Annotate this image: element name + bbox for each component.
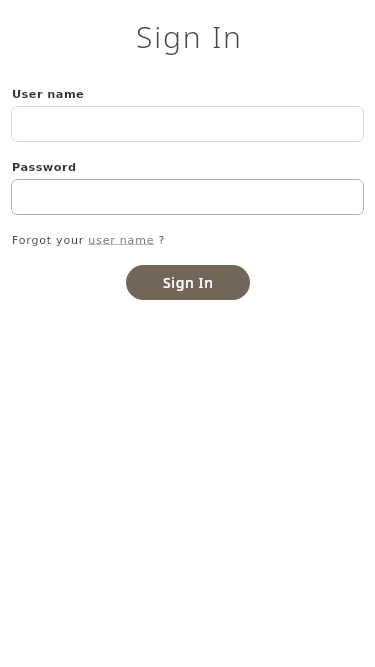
button[interactable]: Forgot your user name ? — [12, 234, 166, 247]
staticText: Sign In — [163, 273, 214, 292]
staticText: Sign In — [136, 16, 243, 57]
button[interactable] — [11, 179, 364, 215]
staticText: Password — [12, 161, 77, 174]
button[interactable]: Sign In — [126, 265, 250, 300]
button[interactable] — [11, 106, 364, 142]
staticText: User name — [12, 88, 85, 101]
